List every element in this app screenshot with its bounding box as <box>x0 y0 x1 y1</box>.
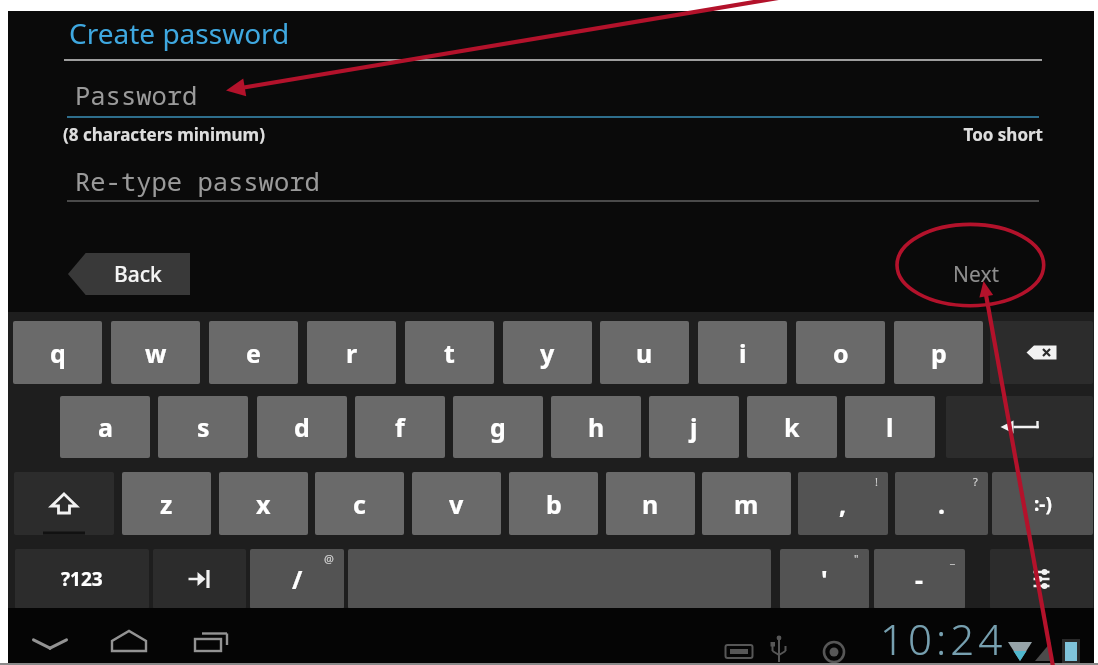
staticText: Back <box>114 260 162 289</box>
button[interactable]: s <box>158 396 248 458</box>
staticText: o <box>833 336 849 370</box>
button[interactable]: Next <box>918 253 1034 295</box>
staticText: b <box>546 487 562 521</box>
staticText: t <box>444 336 455 370</box>
staticText: r <box>346 336 358 370</box>
staticText: w <box>145 336 167 370</box>
button[interactable]: b <box>509 472 598 535</box>
button[interactable]: p <box>894 321 983 384</box>
button[interactable]: f <box>355 396 445 458</box>
button[interactable]: c <box>315 472 404 535</box>
staticText: q <box>50 336 66 370</box>
staticText: - <box>915 562 924 596</box>
staticText: Create password <box>69 14 290 52</box>
staticText: / <box>292 562 303 596</box>
button[interactable]: Delete <box>990 321 1093 384</box>
staticText: . <box>938 487 946 521</box>
button[interactable]: . <box>895 472 988 535</box>
staticText: _ <box>950 551 955 566</box>
staticText: a <box>98 410 113 444</box>
staticText: m <box>734 487 759 521</box>
staticText: Too short <box>948 123 1043 146</box>
button[interactable]: e <box>209 321 298 384</box>
staticText: d <box>294 410 310 444</box>
button[interactable]: x <box>219 472 308 535</box>
staticText: f <box>395 410 405 444</box>
staticText: , <box>839 487 847 521</box>
button[interactable]: d <box>257 396 347 458</box>
staticText: y <box>540 336 555 370</box>
button[interactable]: t <box>405 321 494 384</box>
staticText: " <box>854 551 859 566</box>
button[interactable]: / <box>250 549 344 609</box>
staticText: Next <box>953 260 1000 289</box>
button[interactable]: Shift <box>14 472 114 535</box>
staticText: n <box>642 487 659 521</box>
staticText: Re-type password <box>75 164 320 199</box>
staticText: @ <box>324 551 334 566</box>
staticText: u <box>636 336 653 370</box>
button[interactable]: Create password <box>69 14 290 52</box>
button[interactable]: j <box>649 396 739 458</box>
button[interactable]: Recent apps <box>182 620 246 664</box>
button[interactable]: Enter <box>946 396 1093 458</box>
button[interactable]: q <box>13 321 102 384</box>
staticText: x <box>256 487 271 521</box>
staticText: i <box>739 336 747 370</box>
button[interactable]: Re-type password <box>67 159 1043 204</box>
button[interactable]: u <box>600 321 689 384</box>
button[interactable]: ' <box>780 549 869 609</box>
staticText: (8 characters minimum) <box>63 123 265 146</box>
staticText: ? <box>973 474 978 489</box>
button[interactable]: a <box>60 396 150 458</box>
button[interactable]: z <box>122 472 211 535</box>
staticText: c <box>353 487 366 521</box>
staticText: h <box>588 410 605 444</box>
button[interactable]: n <box>606 472 695 535</box>
button[interactable]: v <box>412 472 501 535</box>
button[interactable]: Back <box>68 253 190 295</box>
staticText: v <box>449 487 464 521</box>
button[interactable]: r <box>307 321 396 384</box>
button[interactable]: Password <box>67 71 1043 119</box>
button[interactable]: m <box>702 472 791 535</box>
button[interactable] <box>348 549 771 609</box>
staticText: :-) <box>1034 491 1052 517</box>
staticText: e <box>246 336 261 370</box>
button[interactable]: o <box>796 321 885 384</box>
staticText: g <box>490 410 506 444</box>
button[interactable]: h <box>551 396 641 458</box>
staticText: s <box>197 410 210 444</box>
button[interactable]: Back <box>18 622 82 665</box>
staticText: ! <box>875 474 878 489</box>
staticText: p <box>931 336 947 370</box>
button[interactable]: w <box>111 321 200 384</box>
staticText: Password <box>75 78 198 113</box>
button[interactable]: k <box>747 396 837 458</box>
button[interactable]: g <box>453 396 543 458</box>
button[interactable]: ?123 <box>15 549 149 609</box>
button[interactable]: y <box>503 321 592 384</box>
button[interactable]: - <box>874 549 965 609</box>
staticText: ?123 <box>61 566 103 592</box>
staticText: j <box>690 410 698 444</box>
staticText: ' <box>821 562 828 596</box>
button[interactable]: Switch keyboard <box>990 549 1093 609</box>
button[interactable]: , <box>798 472 888 535</box>
staticText: k <box>784 410 800 444</box>
button[interactable]: :-) <box>992 472 1093 535</box>
staticText: z <box>160 487 173 521</box>
button[interactable]: Home <box>99 620 163 664</box>
button[interactable]: i <box>698 321 787 384</box>
button[interactable]: l <box>845 396 935 458</box>
staticText: l <box>886 410 894 444</box>
button[interactable]: Tab <box>153 549 246 609</box>
staticText: 10:24 <box>880 610 1007 660</box>
